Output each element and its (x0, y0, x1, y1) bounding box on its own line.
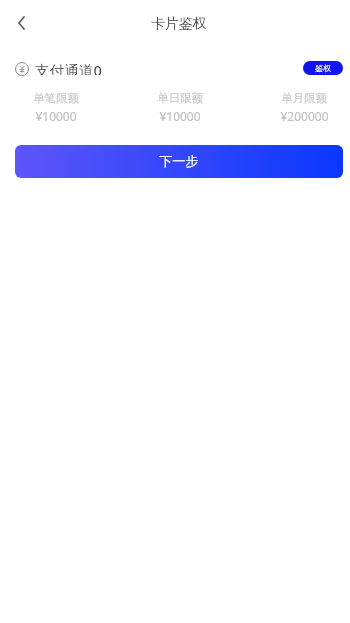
staticText: 卡片鉴权 (151, 15, 207, 33)
staticText: ¥10000 (159, 108, 201, 124)
button[interactable]: 支付通道0 (15, 61, 102, 76)
staticText: ¥10000 (35, 108, 77, 124)
staticText: 鉴权 (315, 63, 331, 73)
staticText: ¥200000 (280, 108, 329, 124)
staticText: 支付通道0 (35, 60, 102, 75)
button[interactable]: 下一步 (15, 145, 343, 178)
button[interactable]: 鉴权 (303, 61, 343, 75)
button[interactable]: Back (6, 7, 37, 38)
staticText: 单月限额 (281, 91, 327, 105)
staticText: 单日限额 (157, 91, 203, 105)
staticText: 下一步 (159, 153, 199, 170)
staticText: 单笔限额 (33, 91, 79, 105)
